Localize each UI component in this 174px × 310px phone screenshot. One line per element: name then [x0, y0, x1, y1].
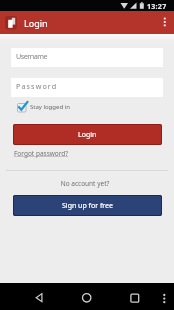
button[interactable]: Password	[11, 78, 163, 97]
staticText: Sign up for free	[62, 201, 113, 211]
button[interactable]: Username	[11, 48, 163, 67]
staticText: Username	[16, 51, 47, 61]
staticText: Login	[24, 17, 48, 29]
button[interactable]	[156, 283, 174, 310]
staticText: Stay logged in	[30, 103, 70, 111]
button[interactable]	[26, 283, 54, 310]
staticText: Password	[16, 81, 58, 91]
button[interactable]: Sign up for free	[13, 195, 162, 216]
button[interactable]	[73, 283, 101, 310]
button[interactable]: Stay logged in	[15, 99, 75, 113]
staticText: Forgot password?	[14, 149, 69, 158]
staticText: Login	[78, 130, 97, 140]
button[interactable]	[117, 283, 145, 310]
button[interactable]: Forgot password?	[14, 149, 69, 158]
staticText: 13:27	[147, 2, 167, 12]
staticText: No account yet?	[0, 179, 172, 188]
button[interactable]: Login	[13, 124, 162, 145]
